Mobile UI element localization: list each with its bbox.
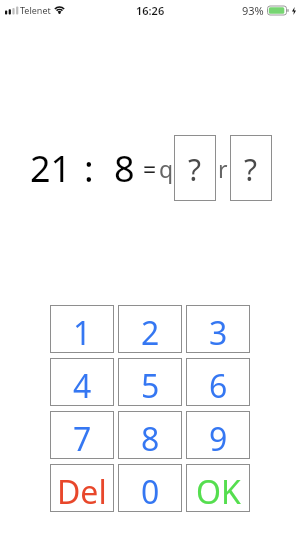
button[interactable]: 9 [186,411,250,459]
button[interactable]: 6 [186,358,250,406]
staticText: ? [188,149,202,190]
staticText: 8 [141,417,160,461]
staticText: q [159,153,174,184]
staticText: OK [196,470,241,514]
button[interactable]: 8 [118,411,182,459]
staticText: r [218,153,228,184]
button[interactable]: 1 [50,305,114,353]
staticText: 16:26 [136,3,165,18]
staticText: : [84,144,94,193]
staticText: Del [57,470,107,514]
button[interactable]: Del [50,464,114,512]
staticText: 4 [73,364,92,408]
button[interactable]: ? [174,135,216,201]
staticText: ? [244,149,258,190]
button[interactable]: 7 [50,411,114,459]
staticText: = [143,153,157,184]
staticText: Telenet [20,4,51,16]
staticText: 2 [141,311,160,355]
staticText: 1 [73,311,92,355]
staticText: 8 [114,144,135,193]
button[interactable]: OK [186,464,250,512]
button[interactable]: 3 [186,305,250,353]
button[interactable]: 2 [118,305,182,353]
staticText: 0 [141,470,160,514]
staticText: 9 [209,417,228,461]
button[interactable]: ? [230,135,272,201]
staticText: 7 [73,417,92,461]
staticText: 3 [209,311,228,355]
staticText: 21 [30,144,72,193]
button[interactable]: 5 [118,358,182,406]
staticText: 6 [209,364,228,408]
button[interactable]: 0 [118,464,182,512]
staticText: 5 [141,364,160,408]
staticText: 93% [242,3,264,18]
button[interactable]: 4 [50,358,114,406]
